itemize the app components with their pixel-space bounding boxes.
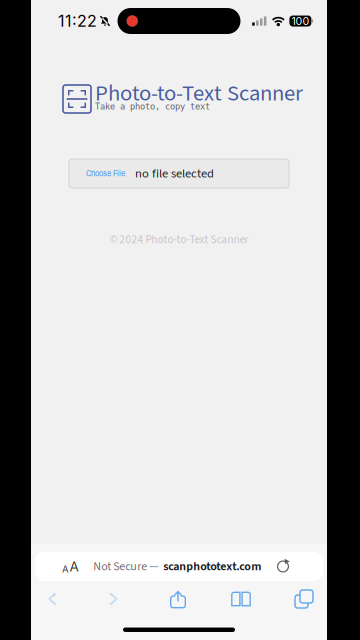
staticText: Take a photo, copy text bbox=[95, 101, 210, 112]
button[interactable]: Tabs bbox=[283, 586, 325, 612]
button[interactable]: Forward bbox=[94, 586, 136, 612]
staticText: A bbox=[62, 563, 69, 575]
staticText: no file selected bbox=[135, 165, 214, 182]
staticText: Choose File bbox=[86, 169, 125, 178]
staticText: scanphototext.com bbox=[163, 558, 261, 575]
button[interactable]: Bookmarks bbox=[220, 586, 262, 612]
button[interactable]: Back bbox=[31, 586, 73, 612]
button[interactable]: Choose File bbox=[69, 159, 289, 188]
staticText: 11:22 bbox=[58, 11, 97, 31]
staticText: © 2024 Photo-to-Text Scanner bbox=[109, 232, 248, 248]
button[interactable]: Share bbox=[157, 586, 199, 612]
staticText: Not Secure — bbox=[93, 558, 159, 575]
button[interactable]: A bbox=[35, 552, 323, 581]
staticText: 100 bbox=[291, 14, 309, 27]
staticText: Photo-to-Text Scanner bbox=[95, 77, 303, 110]
staticText: A bbox=[69, 558, 78, 575]
